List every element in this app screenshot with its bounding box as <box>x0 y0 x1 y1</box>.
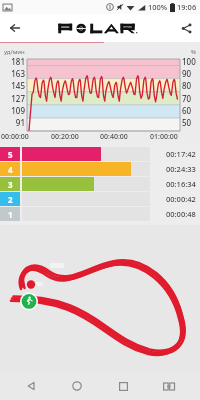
staticText: 00:16:34 <box>166 179 196 189</box>
staticText: 00:00:00 <box>1 132 29 142</box>
button[interactable]: Back <box>16 372 46 400</box>
staticText: 70 <box>182 93 192 104</box>
staticText: 80 <box>182 80 192 91</box>
staticText: 00:24:33 <box>166 164 196 174</box>
button[interactable]: Screenshot <box>154 372 184 400</box>
button[interactable]: 4 <box>0 162 200 176</box>
staticText: 181 <box>11 56 25 67</box>
staticText: % <box>191 48 196 56</box>
staticText: 00:20:00 <box>51 132 79 142</box>
staticText: 109 <box>11 105 25 116</box>
button[interactable]: Recent apps <box>108 372 138 400</box>
staticText: 4 <box>8 164 13 175</box>
staticText: 90 <box>182 68 192 79</box>
staticText: 91 <box>15 117 25 128</box>
staticText: 50 <box>182 117 192 128</box>
staticText: 19:06 <box>177 2 197 12</box>
staticText: 01:00:00 <box>150 132 178 142</box>
button[interactable]: 3 <box>0 177 200 191</box>
button[interactable]: 2 <box>0 192 200 206</box>
staticText: 00:00:48 <box>166 209 196 219</box>
staticText: 100% <box>148 2 168 12</box>
staticText: 163 <box>11 68 25 79</box>
staticText: 00:40:00 <box>100 132 128 142</box>
staticText: 2 <box>8 194 13 205</box>
staticText: 100 <box>182 56 196 67</box>
staticText: уд/мин <box>4 48 25 56</box>
staticText: 3 <box>8 179 13 190</box>
button[interactable]: Share <box>172 14 200 42</box>
button[interactable]: 1 <box>0 207 200 221</box>
staticText: 60 <box>182 105 192 116</box>
button[interactable]: Route map <box>0 225 200 372</box>
button[interactable]: Home <box>62 372 92 400</box>
staticText: 127 <box>11 93 25 104</box>
button[interactable]: 5 <box>0 147 200 161</box>
staticText: 00:17:42 <box>166 149 196 159</box>
button[interactable]: Back <box>0 14 30 42</box>
staticText: 00:00:42 <box>166 194 196 204</box>
staticText: 145 <box>11 80 25 91</box>
staticText: 1 <box>8 209 13 220</box>
staticText: 5 <box>8 149 13 160</box>
